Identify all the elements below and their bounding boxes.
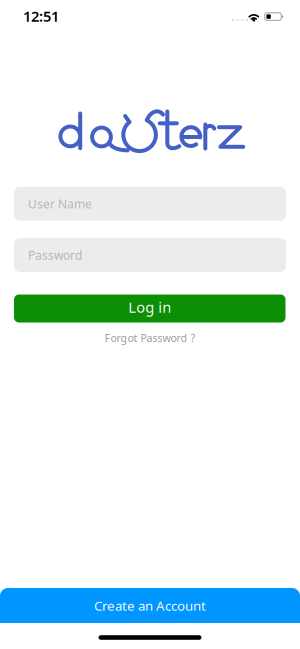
button[interactable]: Log in (14, 294, 285, 322)
button[interactable]: Create an Account (0, 588, 300, 623)
staticText: User Name (28, 196, 92, 212)
staticText: Forgot Password ? (104, 331, 195, 345)
staticText: 12:51 (23, 6, 59, 26)
staticText: Create an Account (94, 597, 206, 614)
staticText: Log in (128, 297, 171, 317)
staticText: Password (28, 247, 82, 263)
button[interactable]: Forgot Password ? (104, 331, 195, 345)
